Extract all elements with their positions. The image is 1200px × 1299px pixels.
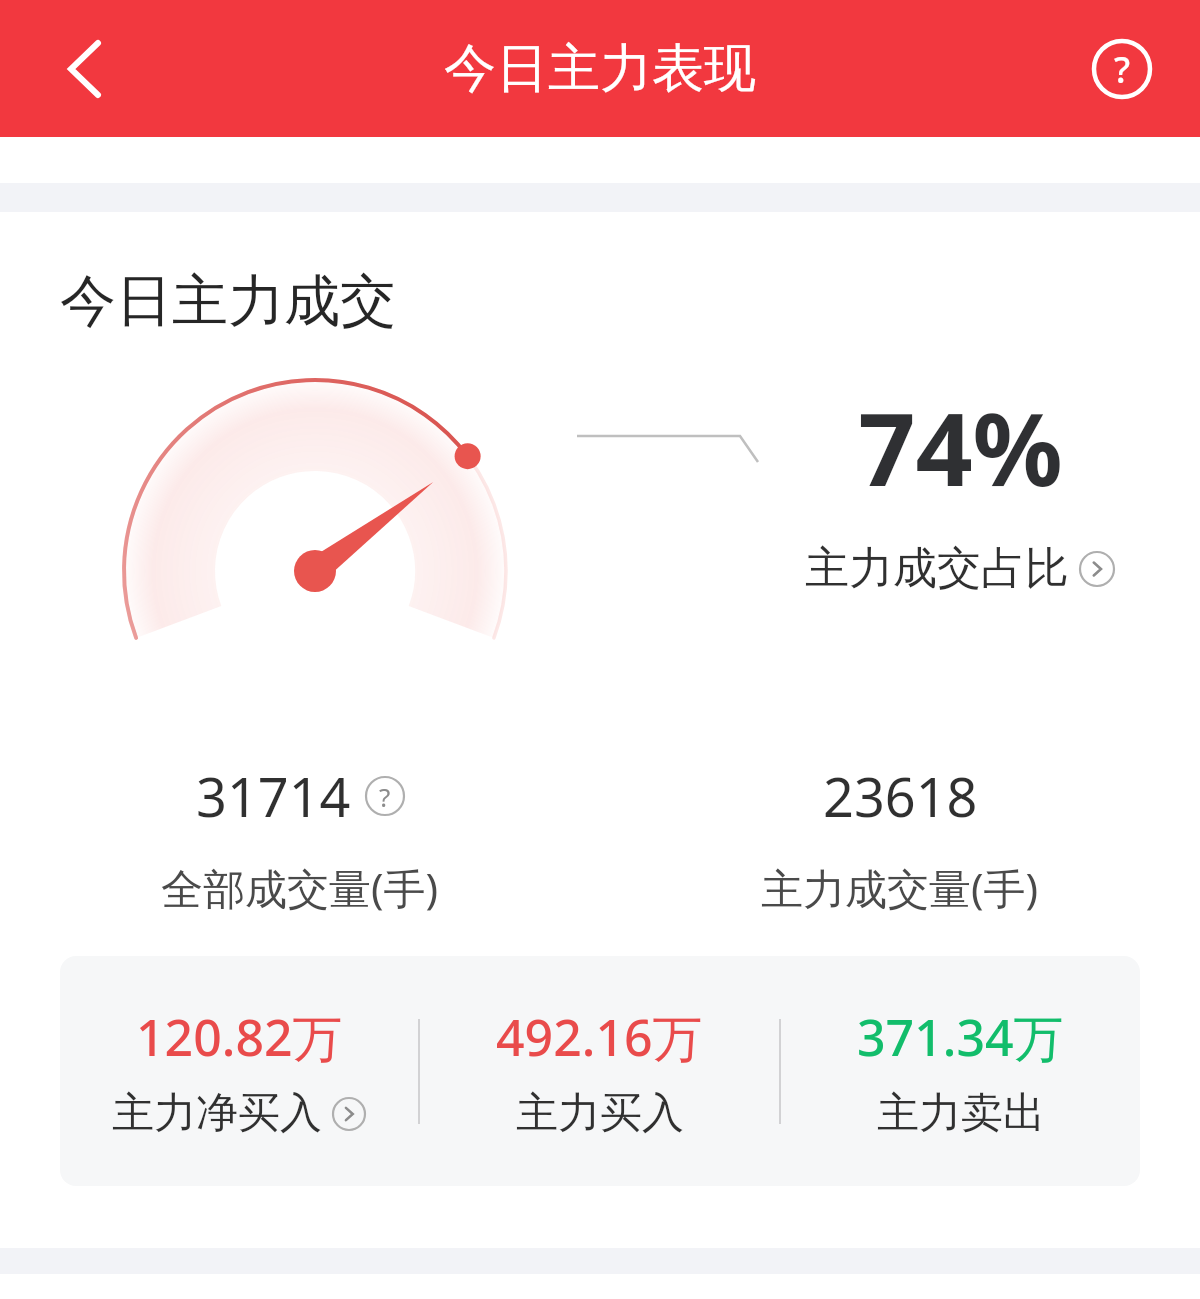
staticText: 今日主力成交 <box>60 266 396 337</box>
staticText: 主力成交量(手) <box>761 859 1039 916</box>
button[interactable]: Help <box>1086 33 1158 105</box>
staticText: ? <box>1114 45 1131 94</box>
staticText: 31714 <box>196 759 351 833</box>
staticText: 全部成交量(手) <box>161 859 439 916</box>
staticText: 120.82万 <box>136 1003 343 1071</box>
button[interactable]: 120.82万 <box>60 1003 418 1140</box>
staticText: 今日主力表现 <box>444 36 756 102</box>
staticText: 主力净买入 <box>112 1087 322 1140</box>
staticText: 371.34万 <box>857 1003 1064 1071</box>
staticText: 74% <box>858 379 1063 515</box>
button[interactable]: 主力成交占比 <box>799 537 1121 600</box>
button[interactable]: 说明 <box>365 776 405 816</box>
staticText: 23618 <box>823 759 978 833</box>
staticText: ? <box>379 779 391 814</box>
staticText: 主力买入 <box>516 1087 684 1140</box>
staticText: 主力卖出 <box>877 1087 1045 1140</box>
button[interactable]: Back <box>36 21 132 117</box>
staticText: 492.16万 <box>496 1003 703 1071</box>
staticText: 主力成交占比 <box>805 541 1069 596</box>
